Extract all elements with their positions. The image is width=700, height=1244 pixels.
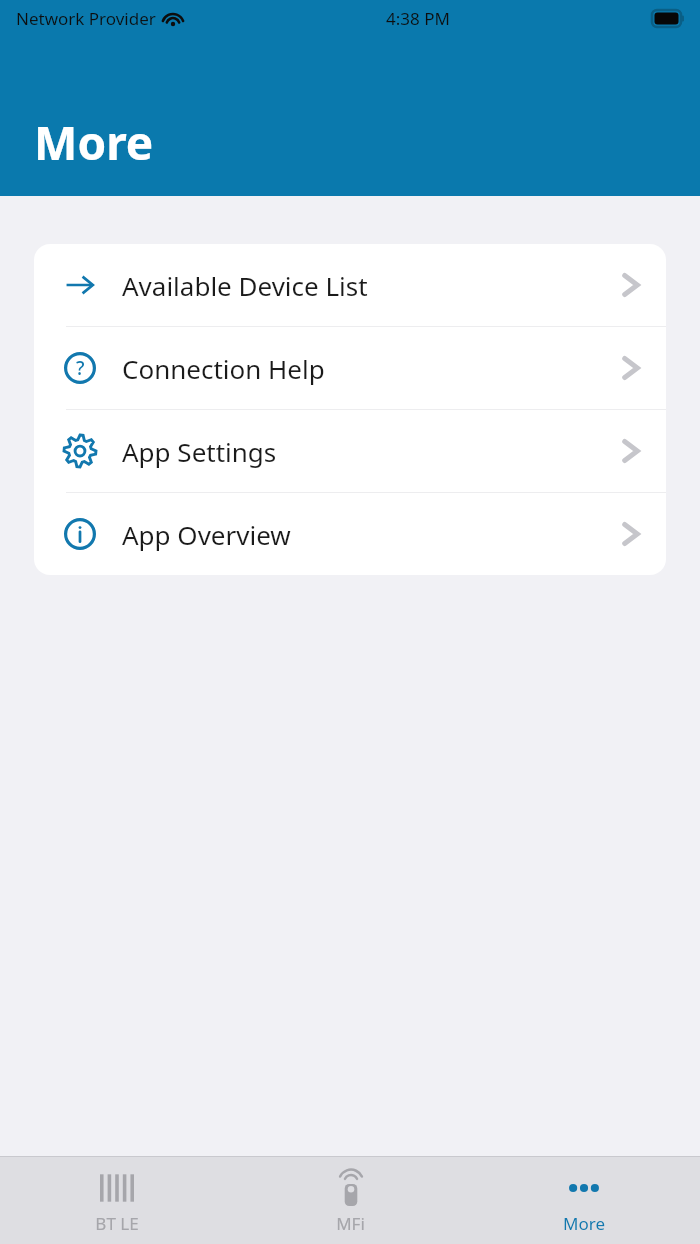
button[interactable]: MFi — [234, 1156, 467, 1244]
button[interactable]: More — [467, 1156, 700, 1244]
staticText: App Overview — [122, 517, 291, 552]
staticText: More — [563, 1212, 605, 1235]
staticText: 4:38 PM — [386, 7, 450, 30]
button[interactable]: ? — [34, 327, 666, 409]
staticText: More — [34, 111, 154, 174]
button[interactable]: App Settings — [34, 410, 666, 492]
staticText: Connection Help — [122, 351, 325, 386]
button[interactable]: Available Device List — [34, 244, 666, 326]
staticText: BT LE — [95, 1212, 139, 1235]
button[interactable]: BT LE — [0, 1156, 234, 1244]
staticText: ? — [76, 355, 85, 381]
staticText: MFi — [336, 1212, 365, 1235]
button[interactable]: App Overview — [34, 493, 666, 575]
staticText: App Settings — [122, 434, 277, 469]
staticText: Available Device List — [122, 268, 368, 303]
staticText: Network Provider — [16, 7, 156, 30]
